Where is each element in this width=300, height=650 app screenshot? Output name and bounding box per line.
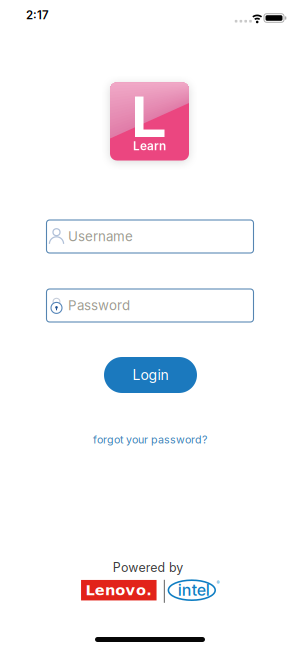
staticText: Lenovo.	[85, 582, 152, 599]
staticText: Powered by	[113, 560, 183, 575]
staticText: Password	[68, 297, 130, 313]
staticText: Learn	[133, 139, 166, 153]
textField[interactable]: Password	[68, 297, 159, 313]
staticText: intel	[178, 580, 210, 600]
button[interactable]: Login	[104, 357, 197, 393]
button[interactable]: forgot your password?	[93, 433, 207, 446]
textField[interactable]: Username	[68, 228, 159, 244]
staticText: forgot your password?	[93, 433, 207, 446]
staticText: Login	[132, 366, 168, 383]
staticText: 2:17	[26, 8, 49, 22]
staticText: Username	[68, 228, 133, 244]
staticText: ®	[216, 580, 219, 586]
